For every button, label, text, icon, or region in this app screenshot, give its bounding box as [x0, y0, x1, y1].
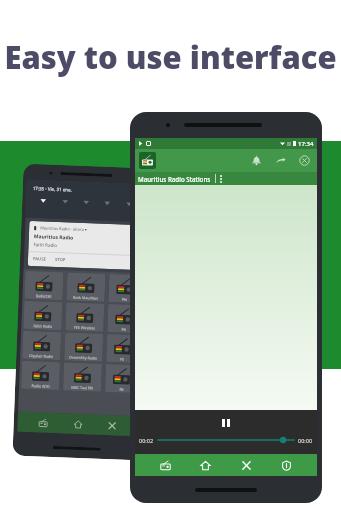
button[interactable]: PAUSE [33, 256, 46, 263]
button[interactable]: App icon [139, 152, 156, 169]
staticText: Fai [121, 326, 126, 332]
button[interactable]: DreamSky Radio [64, 332, 103, 362]
button[interactable]: Notifications [250, 154, 263, 167]
button[interactable]: MBC Taal FM [63, 362, 102, 392]
button[interactable]: STOP [55, 257, 66, 263]
staticText: DreamSky Radio [69, 354, 97, 361]
staticText: Radio230 [35, 293, 52, 299]
button[interactable]: Ra [105, 364, 138, 393]
button[interactable]: About [276, 455, 297, 476]
staticText: Faith Radio [33, 323, 52, 329]
button[interactable]: Tools [102, 416, 122, 436]
staticText: 00:00 [298, 437, 313, 444]
button[interactable]: Share [274, 154, 287, 167]
staticText: 17:35 · Vie, 31 ene. [33, 185, 73, 192]
button[interactable]: Close [298, 154, 311, 167]
staticText: Rock Mauritius [72, 295, 99, 301]
staticText: Faith Radio [33, 241, 58, 248]
button[interactable]: FS [106, 334, 139, 363]
staticText: Dipolair Radio [29, 353, 53, 359]
button[interactable]: Home [68, 415, 88, 434]
staticText: Mauritius Radio [34, 233, 74, 242]
button[interactable]: Pause [216, 413, 236, 433]
button[interactable]: More options [220, 175, 222, 183]
staticText: We [121, 296, 128, 302]
button[interactable]: Dipolair Radio [22, 331, 61, 360]
staticText: Radio ADO [31, 383, 50, 389]
button[interactable]: Stations [155, 455, 176, 476]
button[interactable]: Home [195, 455, 216, 476]
staticText: YES Wireless [73, 325, 95, 330]
staticText: FS [120, 356, 124, 362]
staticText: Mauritius Radio Stations [138, 175, 211, 183]
staticText: Easy to use interface [4, 36, 337, 78]
button[interactable]: Mauritius Radio · ahora ▾ [28, 221, 141, 270]
staticText: Mauritius Radio · ahora ▾ [40, 225, 87, 232]
button[interactable]: Tools [236, 455, 257, 476]
button[interactable]: We [108, 274, 141, 303]
button[interactable]: Faith Radio [23, 301, 62, 330]
button[interactable]: Fai [107, 304, 140, 333]
staticText: MBC Taal FM [71, 385, 93, 390]
button[interactable]: Stations [33, 413, 53, 433]
button[interactable]: Radio ADO [21, 361, 60, 390]
button[interactable]: Radio230 [24, 271, 63, 300]
staticText: 00:02 [139, 437, 154, 444]
staticText: 17:34 [298, 140, 314, 148]
staticText: Ra [119, 386, 124, 392]
button[interactable]: YES Wireless [65, 302, 104, 332]
button[interactable]: Rock Mauritius [66, 272, 105, 302]
